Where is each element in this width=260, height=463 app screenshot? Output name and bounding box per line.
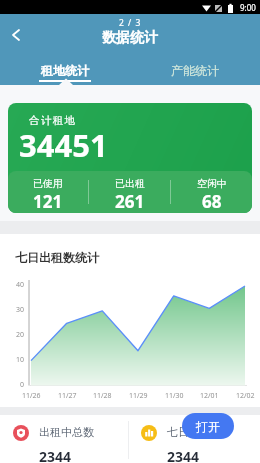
staticText: 12/02 xyxy=(236,391,255,401)
staticText: 12/01 xyxy=(200,391,219,401)
staticText: 七日出租数统计 xyxy=(15,250,99,265)
staticText: 2344 xyxy=(39,447,72,463)
button[interactable]: 七日出租数 xyxy=(129,415,260,463)
staticText: 七日出租数 xyxy=(167,425,222,439)
staticText: 30 xyxy=(16,305,25,315)
button[interactable]: 产能统计 xyxy=(130,63,260,85)
staticText: 20 xyxy=(16,330,25,340)
staticText: 已出租 xyxy=(115,177,145,190)
staticText: 已使用 xyxy=(33,177,63,190)
staticText: 11/26 xyxy=(22,391,41,401)
button[interactable]: 租地统计 xyxy=(0,63,130,85)
staticText: 68 xyxy=(202,190,222,213)
staticText: 9:00 xyxy=(240,2,256,13)
staticText: 10 xyxy=(16,355,25,365)
staticText: 261 xyxy=(115,190,145,213)
staticText: 打开 xyxy=(196,419,220,434)
staticText: 2344 xyxy=(167,447,200,463)
staticText: 合计租地 xyxy=(28,114,76,127)
staticText: 租地统计 xyxy=(41,63,89,78)
button[interactable]: 打开 xyxy=(182,413,234,439)
button[interactable]: 空闲中 xyxy=(171,171,252,213)
staticText: 11/28 xyxy=(93,391,112,401)
staticText: 121 xyxy=(33,190,63,213)
staticText: 40 xyxy=(16,280,25,290)
button[interactable] xyxy=(6,25,26,45)
button[interactable]: 已使用 xyxy=(8,171,88,213)
staticText: 0 xyxy=(20,380,25,390)
staticText: 11/30 xyxy=(165,391,184,401)
button[interactable]: 合计租地 xyxy=(8,103,252,213)
staticText: 空闲中 xyxy=(197,177,227,190)
button[interactable]: 已出租 xyxy=(89,171,170,213)
staticText: 34451 xyxy=(19,124,108,166)
staticText: 2 / 3 xyxy=(119,17,142,29)
staticText: 11/29 xyxy=(129,391,148,401)
staticText: 数据统计 xyxy=(102,29,158,47)
button[interactable]: 出租中总数 xyxy=(0,415,128,463)
staticText: 产能统计 xyxy=(171,63,219,78)
staticText: 出租中总数 xyxy=(39,425,94,439)
staticText: 11/27 xyxy=(58,391,77,401)
